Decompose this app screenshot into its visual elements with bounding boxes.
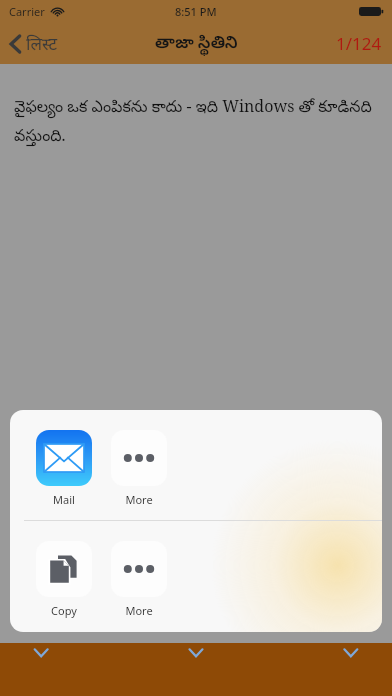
- staticText: Mail: [53, 492, 75, 507]
- staticText: వైఫల్యం ఒక ఎంపికను కాదు - ఇది Windows తో…: [14, 95, 378, 149]
- other: Mail: [36, 430, 92, 486]
- button[interactable]: 1/124: [336, 32, 382, 55]
- staticText: More: [125, 603, 153, 618]
- button[interactable]: Copy: [35, 541, 93, 618]
- button[interactable]: More: [110, 430, 168, 507]
- other: Copy: [36, 541, 92, 597]
- other: More: [111, 541, 167, 597]
- staticText: Cancel: [165, 654, 227, 680]
- button[interactable]: Mail: [35, 430, 93, 507]
- button[interactable]: More: [110, 541, 168, 618]
- staticText: लिस्ट: [26, 32, 58, 55]
- staticText: Copy: [51, 603, 77, 618]
- button[interactable]: लिस्ट: [6, 28, 62, 59]
- staticText: More: [125, 492, 153, 507]
- staticText: 8:51 PM: [175, 4, 217, 19]
- staticText: Carrier: [9, 4, 45, 19]
- other: More: [111, 430, 167, 486]
- button[interactable]: Cancel: [10, 643, 382, 691]
- staticText: తాజా స్థితిని: [155, 30, 238, 56]
